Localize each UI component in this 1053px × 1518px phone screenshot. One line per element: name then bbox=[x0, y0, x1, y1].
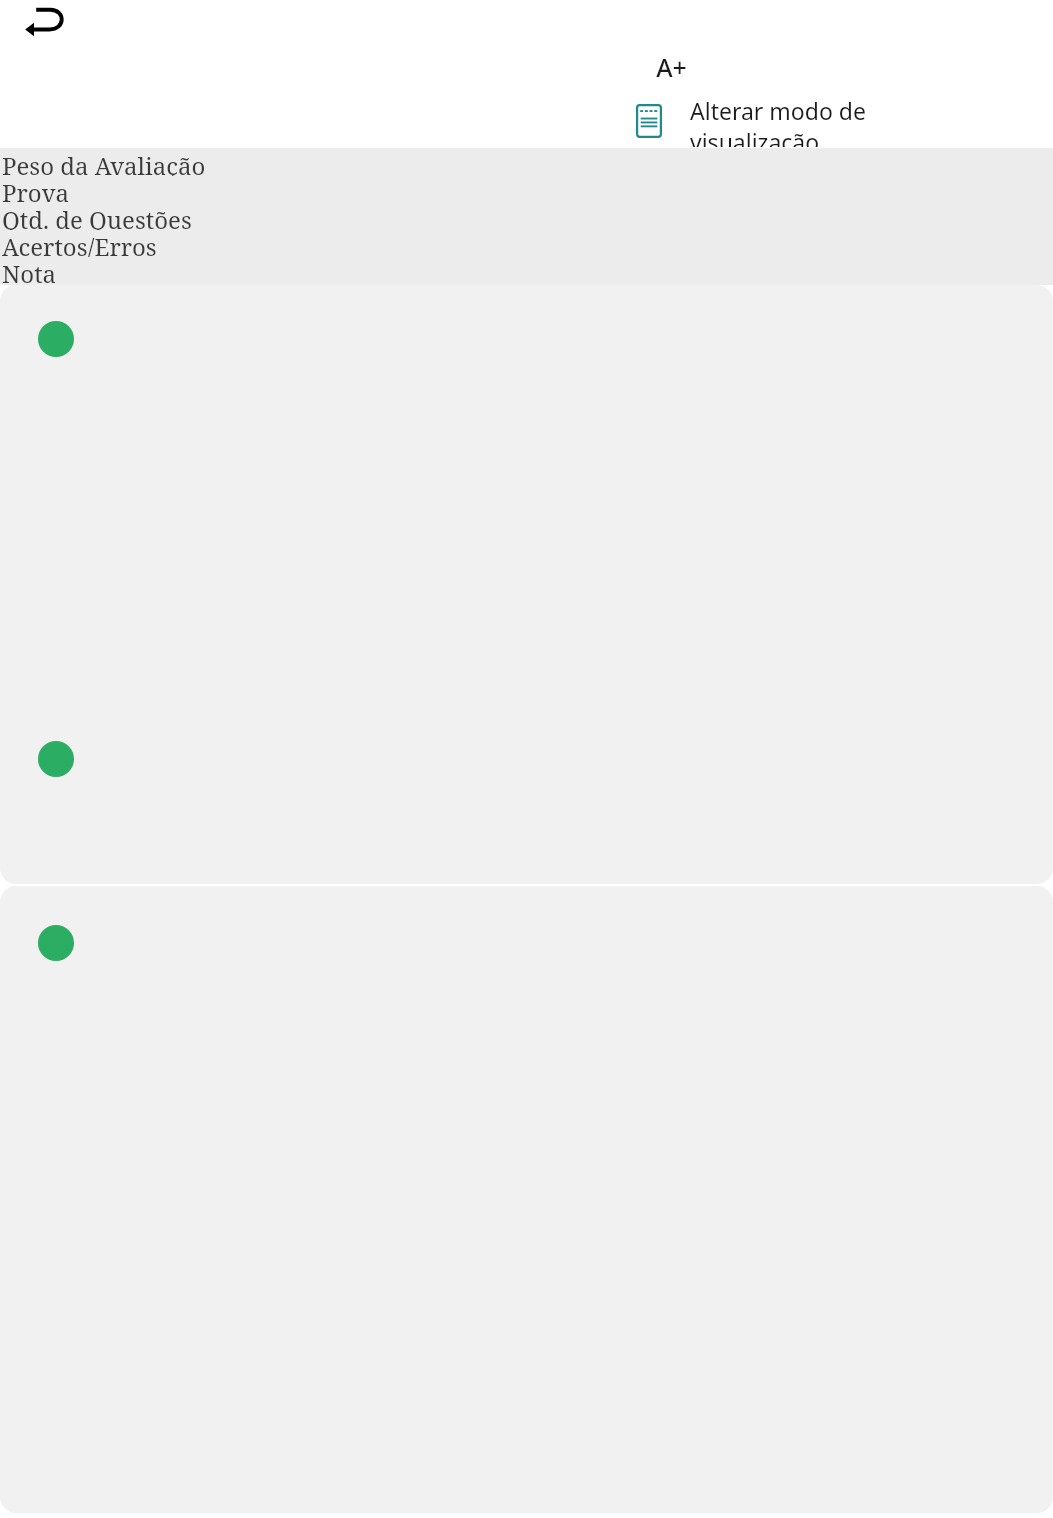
button[interactable]: A+ bbox=[622, 42, 720, 92]
button[interactable]: Voltar bbox=[14, 0, 76, 44]
button[interactable]: Alterar modo de visualização bbox=[611, 95, 978, 147]
button[interactable] bbox=[0, 886, 1053, 1513]
staticText: Acertos/Erros bbox=[2, 230, 157, 257]
button[interactable] bbox=[0, 285, 1053, 884]
staticText: Alterar modo de visualização bbox=[690, 95, 978, 147]
staticText: Qtd. de Questões bbox=[2, 203, 192, 230]
staticText: Prova bbox=[2, 176, 70, 203]
staticText: Nota bbox=[2, 257, 57, 284]
staticText: A+ bbox=[656, 50, 687, 84]
staticText: Peso da Avaliação bbox=[2, 149, 206, 176]
